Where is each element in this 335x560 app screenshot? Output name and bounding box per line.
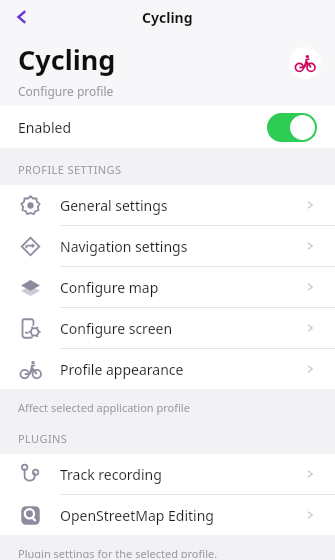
staticText: Track recording bbox=[60, 465, 162, 484]
staticText: Cycling bbox=[142, 8, 193, 27]
staticText: Configure map bbox=[60, 278, 159, 297]
button[interactable]: General settings bbox=[0, 185, 335, 225]
staticText: Cycling bbox=[18, 41, 116, 78]
button[interactable]: Profile appearance bbox=[0, 349, 335, 389]
staticText: Affect selected application profile bbox=[18, 400, 190, 415]
staticText: General settings bbox=[60, 196, 168, 215]
staticText: PROFILE SETTINGS bbox=[18, 162, 122, 177]
button[interactable]: Configure map bbox=[0, 267, 335, 307]
staticText: Configure profile bbox=[18, 83, 114, 99]
staticText: OpenStreetMap Editing bbox=[60, 506, 214, 525]
staticText: Configure screen bbox=[60, 319, 173, 338]
button[interactable]: Enabled bbox=[0, 106, 335, 148]
staticText: Profile appearance bbox=[60, 360, 184, 379]
button[interactable]: Navigation settings bbox=[0, 226, 335, 266]
staticText: Navigation settings bbox=[60, 237, 188, 256]
button[interactable]: OpenStreetMap Editing bbox=[0, 495, 335, 535]
button[interactable]: Configure screen bbox=[0, 308, 335, 348]
staticText: PLUGINS bbox=[18, 431, 68, 446]
button[interactable]: Back bbox=[0, 0, 44, 34]
button[interactable]: Profile icon bbox=[289, 47, 321, 79]
staticText: Enabled bbox=[18, 118, 72, 137]
button[interactable]: Track recording bbox=[0, 454, 335, 494]
staticText: Plugin settings for the selected profile… bbox=[18, 546, 218, 558]
